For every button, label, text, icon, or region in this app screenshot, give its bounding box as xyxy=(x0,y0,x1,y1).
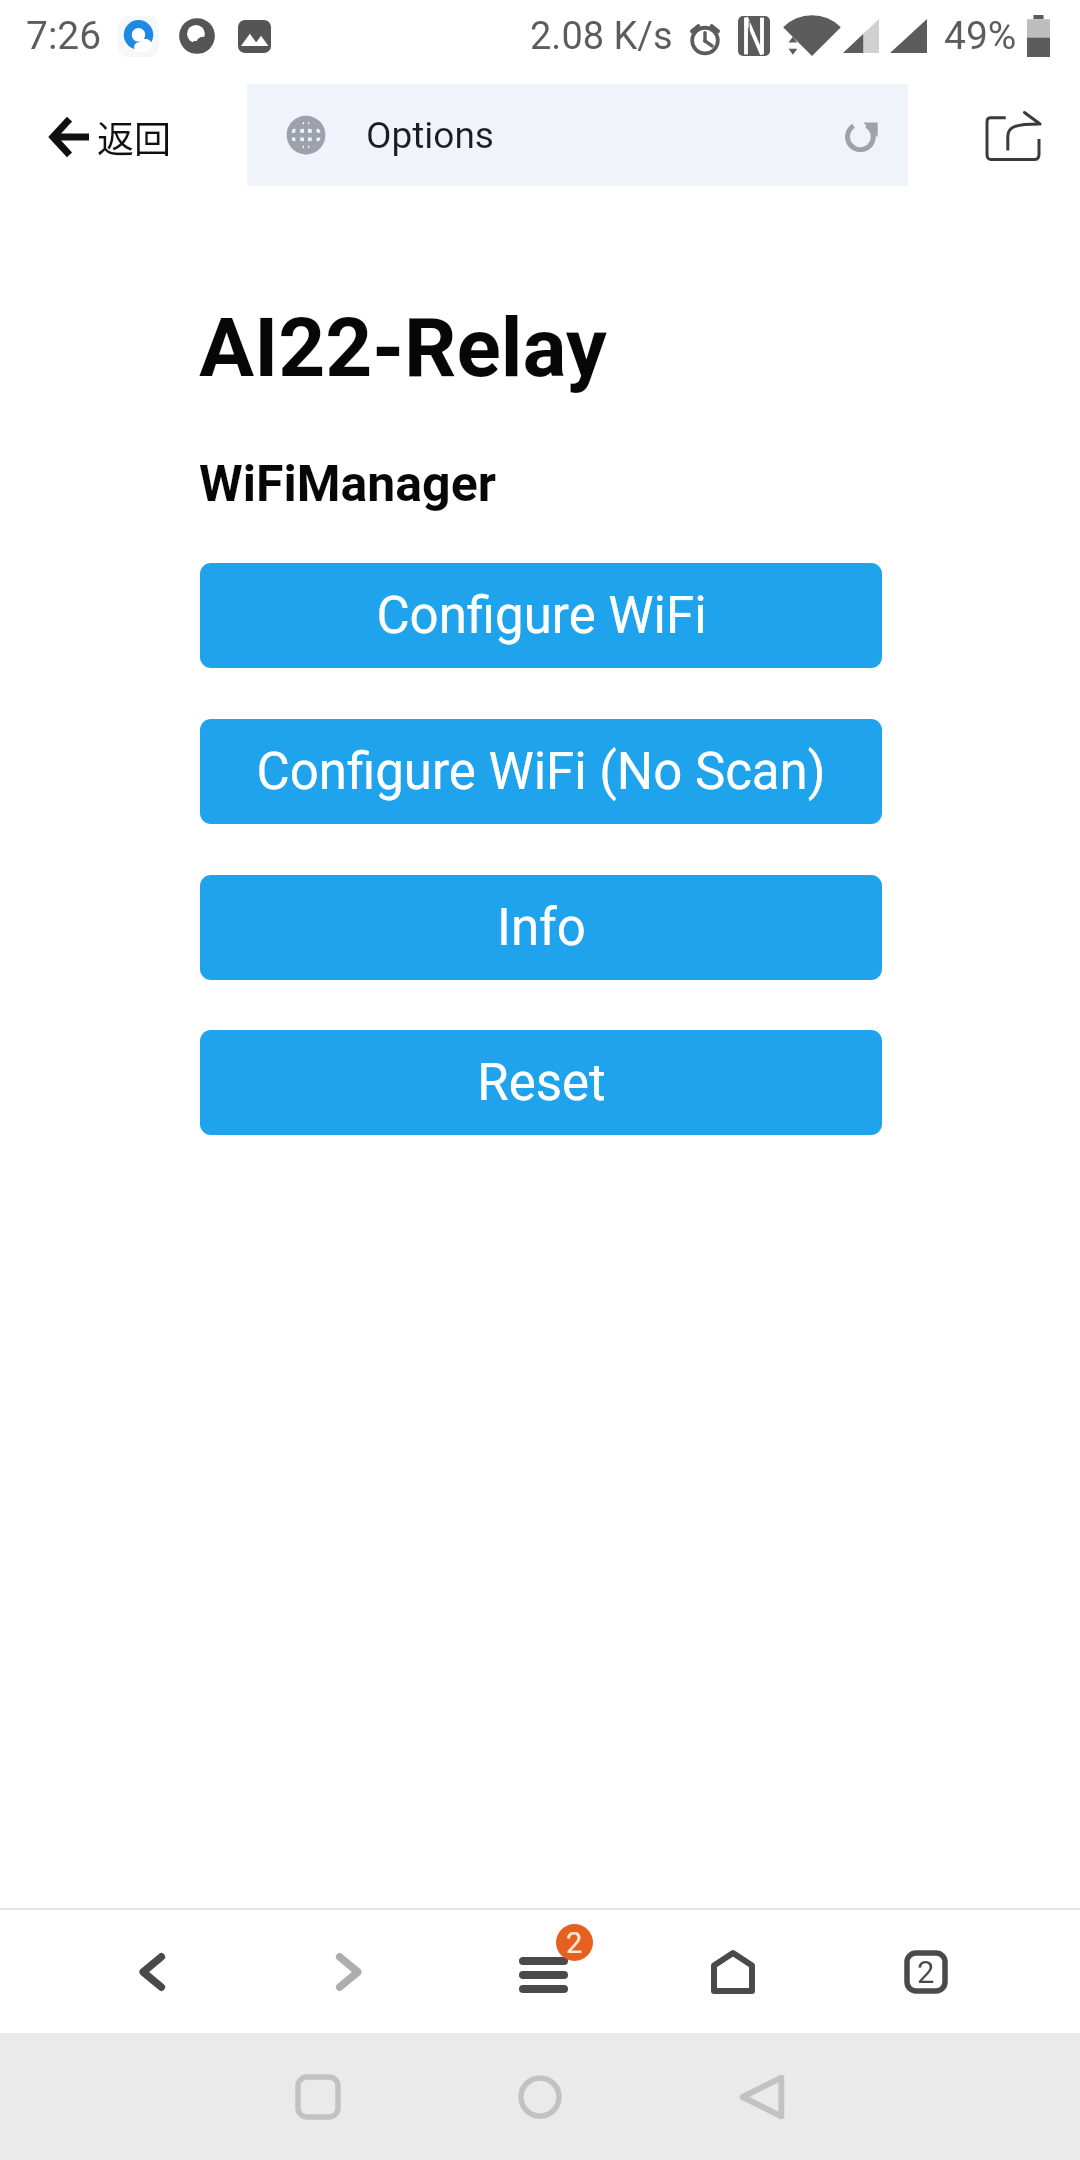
button[interactable]: Configure WiFi xyxy=(200,563,882,668)
button[interactable]: Menu xyxy=(470,1910,640,2033)
staticText: 49% xyxy=(944,13,1017,59)
button[interactable]: Reset xyxy=(200,1030,882,1135)
button[interactable]: Options xyxy=(247,84,908,186)
staticText: Reset xyxy=(477,1053,606,1113)
staticText: 返回 xyxy=(97,110,171,164)
button[interactable]: Share xyxy=(968,92,1058,180)
button[interactable]: Back xyxy=(651,2033,873,2160)
button[interactable]: Configure WiFi (No Scan) xyxy=(200,719,882,824)
button[interactable]: Home xyxy=(648,1910,818,2033)
button[interactable]: Home xyxy=(429,2033,651,2160)
button[interactable]: Recents xyxy=(207,2033,429,2160)
button[interactable]: Reload xyxy=(820,84,908,186)
staticText: Options xyxy=(366,114,494,157)
staticText: 7:26 xyxy=(26,13,102,59)
button[interactable]: 返回 xyxy=(50,98,171,176)
staticText: Configure WiFi (No Scan) xyxy=(256,742,826,802)
button[interactable]: Info xyxy=(200,875,882,980)
staticText: Configure WiFi xyxy=(376,586,707,646)
button[interactable]: Forward xyxy=(264,1910,434,2033)
staticText: Info xyxy=(497,898,586,958)
staticText: 2 xyxy=(566,1926,583,1960)
button[interactable]: Back xyxy=(67,1910,237,2033)
staticText: WiFiManager xyxy=(199,455,496,514)
staticText: 2.08 K/s xyxy=(530,14,673,59)
button[interactable]: Tabs xyxy=(841,1910,1011,2033)
staticText: 2 xyxy=(917,1954,935,1990)
staticText: AI22-Relay xyxy=(199,300,608,396)
